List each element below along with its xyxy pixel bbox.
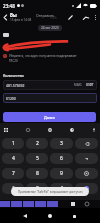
staticText: USDT [86, 83, 94, 87]
button[interactable]: Далее [3, 112, 96, 122]
staticText: 6 [60, 155, 63, 162]
staticText: 4 [12, 155, 15, 162]
button[interactable]: Ввод [75, 183, 98, 194]
staticText: 9 [60, 170, 63, 177]
button[interactable]: $1200 [3, 93, 97, 103]
staticText: 0 [36, 185, 39, 192]
button[interactable]: 481.573692 [3, 80, 97, 90]
staticText: Убедитесь, что адрес получателя поддержи… [9, 54, 77, 58]
button[interactable]: Назад [1, 13, 10, 22]
staticText: # [60, 185, 64, 192]
button[interactable]: 0 [26, 183, 48, 194]
button[interactable]: Поделиться [66, 13, 75, 22]
staticText: Вы [10, 12, 17, 18]
button[interactable]: Эмодзи [68, 126, 76, 134]
staticText: Далее [44, 115, 55, 120]
staticText: МАКС [74, 83, 83, 87]
button[interactable]: Ещё [91, 13, 100, 22]
staticText: 2 [36, 140, 39, 147]
staticText: Отправить [36, 13, 55, 18]
button[interactable]: Назад [19, 210, 31, 222]
button[interactable]: Недавние [68, 210, 80, 222]
button[interactable]: Буфер обмена [24, 126, 32, 134]
staticText: 100% [50, 16, 57, 20]
button[interactable]: * [2, 183, 24, 194]
button[interactable]: 8 [26, 168, 48, 179]
staticText: Количество [3, 73, 24, 78]
button[interactable]: 2 [26, 138, 48, 149]
button[interactable]: 3 [50, 138, 73, 149]
button[interactable]: Удалить [75, 138, 98, 149]
staticText: ⇥ [85, 156, 89, 161]
staticText: Приложение "SafePal" запрашивает доступ … [18, 190, 83, 194]
staticText: 8 [36, 170, 39, 177]
staticText: 3 [60, 140, 63, 147]
staticText: TRC20 [9, 59, 18, 63]
button[interactable]: 4 [2, 153, 24, 164]
button[interactable]: Прикрепить [81, 13, 90, 22]
button[interactable]: Голосовой ввод [90, 126, 98, 134]
button[interactable]: Настройки [46, 126, 54, 134]
staticText: 5 [36, 155, 39, 162]
button[interactable]: Домой [44, 210, 56, 222]
staticText: 23:48 [3, 3, 15, 9]
staticText: 15 фев в 14:08 [10, 18, 32, 22]
button[interactable]: 6 [50, 153, 73, 164]
staticText: * [12, 185, 15, 192]
staticText: 1 [12, 140, 15, 147]
button[interactable]: 9 [50, 168, 73, 179]
staticText: $1200 [6, 96, 16, 101]
staticText: 7 [12, 170, 15, 177]
button[interactable]: 1 [2, 138, 24, 149]
button[interactable]: 5 [26, 153, 48, 164]
staticText: 481.573692 [6, 83, 25, 88]
button[interactable]: 7 [2, 168, 24, 179]
button[interactable]: Скрыть [75, 168, 98, 179]
button[interactable]: Таб [75, 153, 98, 164]
button[interactable]: Клавиатуры [2, 126, 10, 134]
staticText: 24 окт 2023 [41, 26, 59, 30]
button[interactable]: # [50, 183, 73, 194]
